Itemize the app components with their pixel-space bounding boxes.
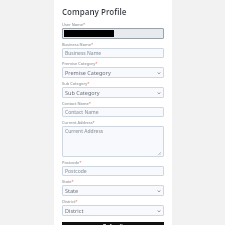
- button[interactable]: Business Name: [62, 48, 164, 58]
- staticText: Postcode: [65, 168, 87, 175]
- staticText: Premise Category: [65, 69, 111, 76]
- staticText: User Name*: [62, 22, 86, 27]
- staticText: Current Address: [65, 128, 104, 135]
- staticText: Submit: [103, 222, 124, 225]
- staticText: Current Address*: [62, 120, 95, 125]
- staticText: Business Name: [65, 50, 102, 57]
- staticText: Business Name*: [62, 42, 94, 47]
- staticText: Contact Name*: [62, 101, 91, 106]
- staticText: State*: [62, 179, 74, 184]
- button[interactable]: [62, 28, 164, 39]
- button[interactable]: Postcode: [62, 166, 164, 176]
- button[interactable]: Contact Name: [62, 107, 164, 117]
- button[interactable]: Submit: [62, 222, 164, 225]
- button[interactable]: Sub Category: [62, 87, 164, 98]
- staticText: Contact Name: [65, 109, 99, 116]
- staticText: State: [65, 187, 79, 194]
- button[interactable]: Current Address: [62, 126, 164, 157]
- staticText: Postcode*: [62, 160, 82, 165]
- button[interactable]: State: [62, 185, 164, 196]
- button[interactable]: Premise Category: [62, 67, 164, 78]
- staticText: District: [65, 207, 84, 214]
- staticText: Premise Category*: [62, 61, 98, 66]
- staticText: Company Profile: [62, 6, 127, 17]
- staticText: Sub Category*: [62, 81, 90, 86]
- staticText: District*: [62, 199, 78, 204]
- button[interactable]: District: [62, 205, 164, 216]
- staticText: Sub Category: [65, 89, 100, 96]
